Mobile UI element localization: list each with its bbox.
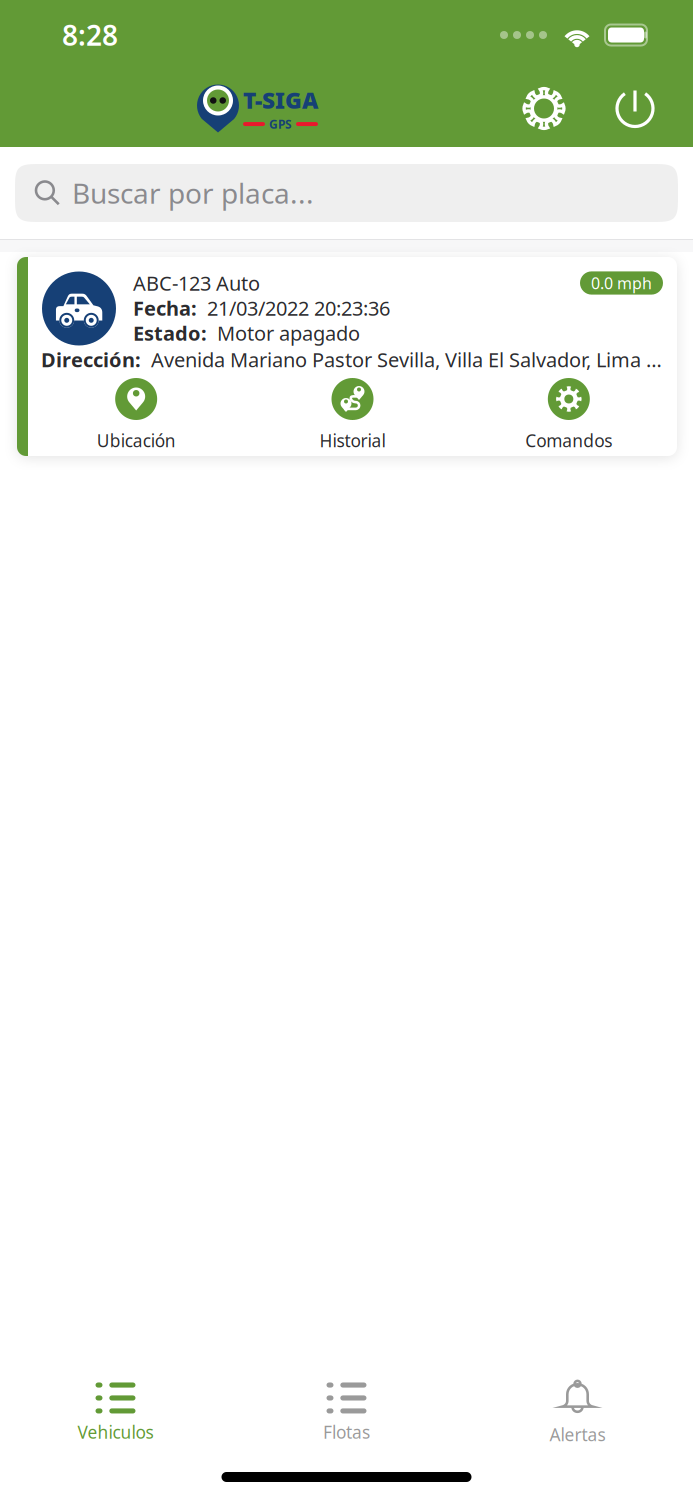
staticText: Avenida Mariano Pastor Sevilla, Villa El… (141, 346, 665, 373)
button[interactable]: Power (609, 82, 661, 134)
staticText: GPS (269, 116, 292, 132)
staticText: T-SIGA (243, 85, 318, 115)
staticText: Alertas (549, 1423, 605, 1446)
button[interactable]: Alertas (462, 1368, 693, 1454)
staticText: Historial (319, 429, 385, 452)
staticText: ABC-123 Auto (133, 270, 260, 296)
staticText: Fecha: (133, 295, 197, 321)
staticText: 8:28 (62, 16, 118, 54)
button[interactable]: Comandos (461, 378, 677, 452)
button[interactable]: Buscar por placa... (15, 164, 678, 222)
button[interactable]: Settings (515, 79, 573, 137)
staticText: 21/03/2022 20:23:36 (197, 295, 390, 321)
staticText: Comandos (525, 429, 612, 452)
button[interactable]: Historial (244, 378, 461, 452)
button[interactable]: Ubicación (28, 378, 244, 452)
staticText: Estado: (133, 320, 207, 346)
staticText: Dirección: (41, 346, 141, 373)
staticText: 0.0 mph (591, 272, 652, 294)
staticText: Flotas (323, 1420, 370, 1443)
staticText: Buscar por placa... (72, 174, 314, 212)
staticText: Ubicación (97, 429, 176, 452)
staticText: Vehiculos (77, 1420, 153, 1443)
button[interactable]: Flotas (231, 1370, 462, 1451)
staticText: Motor apagado (207, 320, 360, 346)
button[interactable]: Vehiculos (0, 1370, 231, 1451)
button[interactable]: ABC-123 Auto (17, 257, 677, 456)
